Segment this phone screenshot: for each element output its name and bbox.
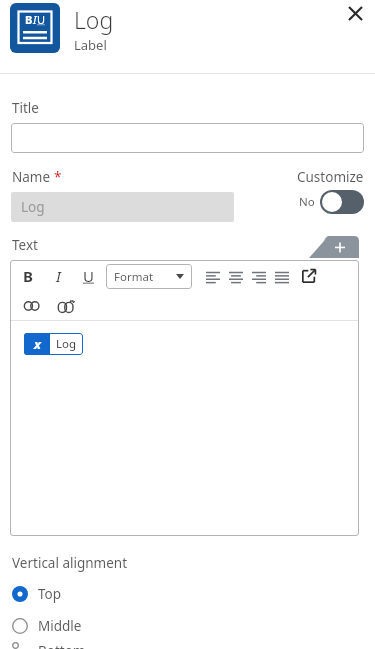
- staticText: I: [56, 266, 61, 286]
- staticText: U: [37, 12, 46, 27]
- staticText: Bottom: [38, 642, 86, 649]
- button[interactable]: Align center: [224, 265, 247, 288]
- staticText: U: [83, 266, 94, 286]
- button[interactable]: Bottom: [0, 642, 375, 649]
- staticText: Label: [74, 36, 107, 54]
- button[interactable]: Close: [335, 0, 375, 33]
- staticText: Format: [114, 269, 154, 285]
- button[interactable]: Justify: [270, 265, 293, 288]
- button[interactable]: Top: [0, 578, 375, 610]
- staticText: Title: [12, 99, 39, 117]
- staticText: Top: [38, 585, 62, 603]
- button[interactable]: Insert link: [20, 294, 44, 318]
- staticText: Name: [12, 168, 54, 186]
- staticText: Customize: [297, 168, 364, 186]
- staticText: Log: [56, 336, 77, 352]
- button[interactable]: Align right: [247, 265, 270, 288]
- staticText: B: [25, 12, 33, 27]
- button[interactable]: Remove link: [54, 294, 78, 318]
- staticText: Vertical alignment: [12, 554, 128, 572]
- staticText: B: [23, 266, 33, 286]
- button[interactable]: Bold: [18, 266, 38, 286]
- button[interactable]: Format: [106, 264, 192, 289]
- staticText: *: [54, 168, 62, 186]
- staticText: No: [299, 194, 315, 210]
- staticText: Text: [12, 236, 38, 254]
- button[interactable]: Add: [309, 236, 359, 258]
- button[interactable]: Underline: [78, 266, 98, 286]
- staticText: Log: [21, 198, 45, 216]
- button[interactable]: Label element icon: [10, 3, 60, 53]
- button[interactable]: Middle: [0, 610, 375, 642]
- button[interactable]: Open source: [298, 265, 320, 287]
- button[interactable]: Log: [11, 192, 234, 222]
- button[interactable]: Align left: [201, 265, 224, 288]
- button[interactable]: No: [299, 190, 364, 214]
- staticText: Log: [74, 4, 114, 35]
- button[interactable]: Italic: [48, 266, 68, 286]
- staticText: Middle: [38, 617, 82, 635]
- staticText: I: [33, 12, 37, 27]
- button[interactable]: x: [24, 333, 83, 355]
- button[interactable]: [11, 123, 364, 153]
- staticText: x: [34, 335, 41, 353]
